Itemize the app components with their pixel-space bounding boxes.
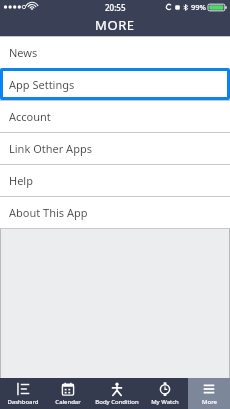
button[interactable]: About This App [0, 196, 230, 228]
staticText: Calendar [55, 398, 81, 406]
button[interactable]: My Watch [142, 378, 188, 409]
staticText: Account [9, 109, 51, 124]
button[interactable]: Link Other Apps [0, 132, 230, 164]
staticText: 99% [191, 2, 206, 12]
staticText: 20:55 [105, 2, 126, 13]
staticText: My Watch [151, 398, 179, 406]
button[interactable]: Body Condition [91, 378, 142, 409]
staticText: Body Condition [95, 398, 139, 406]
staticText: News [9, 45, 38, 60]
button[interactable]: Dashboard [0, 378, 45, 409]
staticText: Help [9, 173, 33, 188]
staticText: Dashboard [7, 398, 39, 406]
staticText: MORE [95, 16, 135, 34]
button[interactable]: Calendar [45, 378, 91, 409]
button[interactable]: Help [0, 164, 230, 196]
staticText: App Settings [9, 77, 75, 92]
staticText: About This App [9, 205, 88, 220]
button[interactable]: Account [0, 100, 230, 132]
button[interactable]: News [0, 36, 230, 68]
staticText: More [202, 398, 217, 406]
button[interactable]: More [188, 378, 230, 409]
button[interactable]: App Settings [0, 68, 230, 100]
staticText: Link Other Apps [9, 141, 92, 156]
